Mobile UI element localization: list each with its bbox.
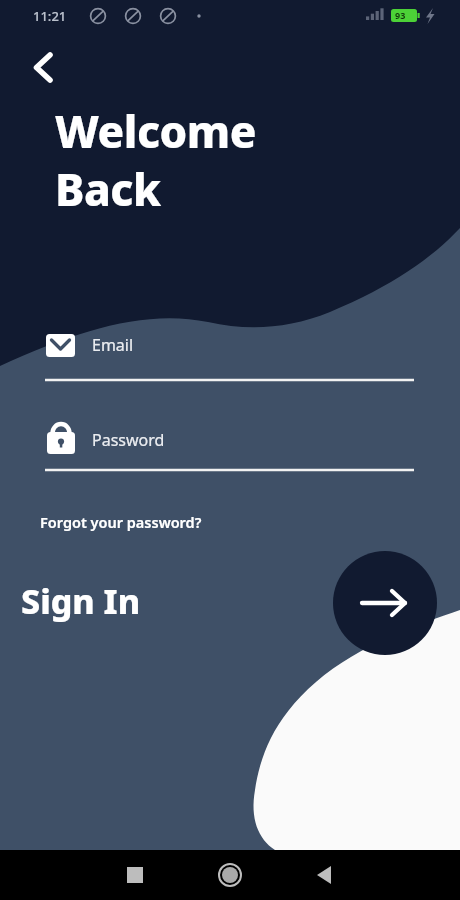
staticText: Forgot your password? bbox=[40, 512, 202, 532]
button[interactable] bbox=[18, 572, 183, 634]
button[interactable]: Sign in bbox=[333, 551, 437, 655]
staticText: Email bbox=[92, 334, 134, 356]
button[interactable] bbox=[40, 326, 415, 384]
staticText: Sign In bbox=[21, 578, 141, 624]
staticText: 11:21 bbox=[33, 7, 67, 25]
staticText: 93 bbox=[395, 9, 406, 21]
button[interactable]: System back bbox=[300, 850, 350, 900]
button[interactable]: Back bbox=[22, 45, 72, 93]
staticText: Welcome bbox=[55, 101, 256, 161]
button[interactable]: Recents bbox=[110, 850, 160, 900]
staticText: Password bbox=[92, 429, 165, 451]
staticText: Back bbox=[55, 159, 161, 219]
button[interactable] bbox=[40, 420, 415, 474]
button[interactable]: Home bbox=[205, 850, 255, 900]
button[interactable] bbox=[38, 506, 238, 538]
